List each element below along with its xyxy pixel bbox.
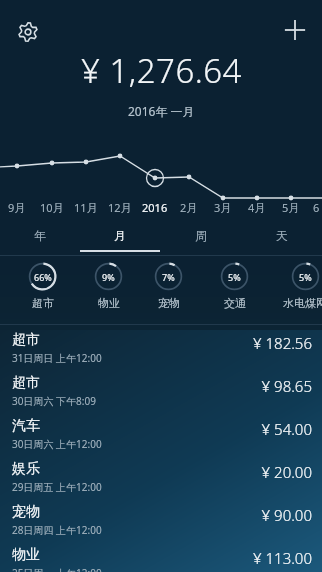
staticText: ¥ 90.00	[261, 505, 312, 525]
button[interactable]: 物业	[0, 543, 322, 572]
staticText: 7%	[162, 271, 175, 283]
button[interactable]: 4月	[237, 200, 277, 215]
button[interactable]: 5%	[203, 262, 265, 320]
staticText: 25日周一 上午12:00	[12, 566, 102, 572]
button[interactable]: 11月	[66, 200, 106, 215]
button[interactable]: 超市	[0, 328, 322, 371]
staticText: ¥ 98.65	[261, 376, 312, 396]
staticText: 4月	[248, 200, 266, 215]
button[interactable]: 月	[80, 224, 160, 255]
staticText: 31日周日 上午12:00	[12, 351, 102, 365]
staticText: 10月	[40, 200, 64, 215]
staticText: ¥ 54.00	[261, 419, 312, 439]
button[interactable]: 周	[160, 224, 241, 255]
staticText: 11月	[74, 200, 98, 215]
button[interactable]: 12月	[100, 200, 140, 215]
staticText: 30日周六 下午8:09	[12, 394, 96, 408]
staticText: 28日周四 上午12:00	[12, 523, 102, 537]
button[interactable]: 超市	[0, 371, 322, 414]
staticText: 超市	[32, 296, 54, 310]
button[interactable]: 2016	[135, 200, 175, 215]
staticText: 2016	[142, 200, 168, 215]
staticText: 5%	[299, 271, 312, 283]
button[interactable]: 2月	[169, 200, 209, 215]
staticText: 物业	[12, 546, 40, 564]
staticText: 5%	[228, 271, 241, 283]
staticText: 5月	[282, 200, 300, 215]
staticText: 12月	[108, 200, 132, 215]
staticText: 9月	[8, 200, 26, 215]
button[interactable]: 宠物	[0, 500, 322, 543]
staticText: 天	[276, 228, 288, 243]
staticText: 3月	[214, 200, 232, 215]
staticText: 超市	[12, 331, 40, 349]
button[interactable]: 年	[0, 224, 80, 255]
button[interactable]: 66%	[11, 262, 73, 320]
staticText: 超市	[12, 374, 40, 392]
staticText: 宠物	[158, 296, 180, 310]
staticText: 水电煤网	[283, 296, 322, 310]
button[interactable]: 7%	[137, 262, 199, 320]
staticText: 9%	[102, 271, 115, 283]
staticText: 2月	[180, 200, 198, 215]
button[interactable]: 5月	[271, 200, 311, 215]
staticText: 6	[313, 200, 320, 215]
staticText: 周	[195, 228, 207, 243]
button[interactable]: 3月	[203, 200, 243, 215]
staticText: 月	[114, 228, 126, 243]
staticText: 宠物	[12, 503, 40, 521]
staticText: ¥ 20.00	[261, 462, 312, 482]
staticText: ¥ 113.00	[253, 548, 312, 568]
button[interactable]: 9%	[77, 262, 139, 320]
staticText: 物业	[98, 296, 120, 310]
button[interactable]: Add transaction	[275, 10, 315, 50]
staticText: 年	[34, 228, 46, 243]
staticText: 汽车	[12, 417, 40, 435]
staticText: 66%	[34, 271, 52, 283]
button[interactable]: 10月	[32, 200, 72, 215]
button[interactable]: 天	[241, 224, 322, 255]
staticText: 2016年 一月	[128, 103, 195, 119]
staticText: 29日周五 上午12:00	[12, 480, 102, 494]
staticText: 30日周六 上午12:00	[12, 437, 102, 451]
button[interactable]: 9月	[0, 200, 37, 215]
button[interactable]: Settings	[8, 12, 48, 52]
button[interactable]: 汽车	[0, 414, 322, 457]
staticText: 娱乐	[12, 460, 40, 478]
button[interactable]: 娱乐	[0, 457, 322, 500]
button[interactable]: 5%	[274, 262, 322, 320]
staticText: ¥ 182.56	[253, 333, 312, 353]
staticText: 交通	[224, 296, 246, 310]
staticText: ¥ 1,276.64	[81, 48, 242, 93]
